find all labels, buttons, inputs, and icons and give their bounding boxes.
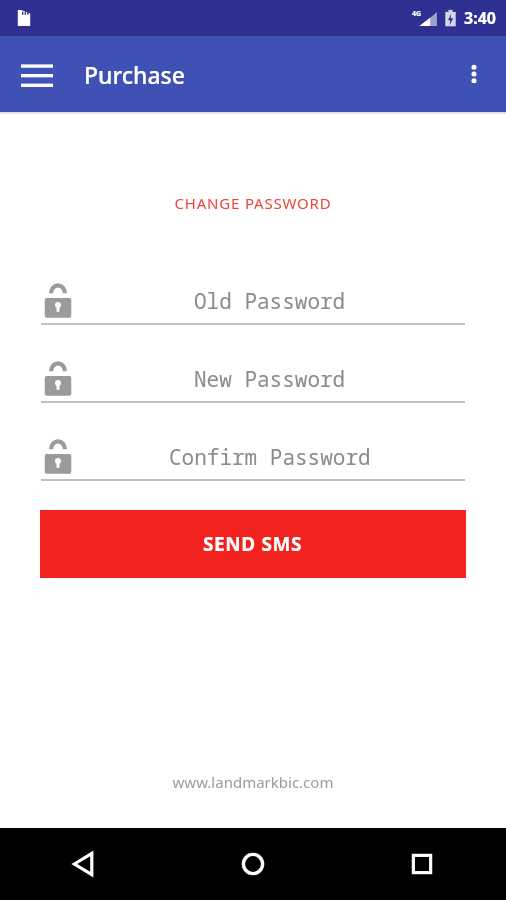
staticText: www.landmarkbic.com	[0, 772, 506, 792]
staticText: Old Password	[194, 287, 346, 316]
staticText: CHANGE PASSWORD	[0, 193, 506, 213]
staticText: 4G	[412, 9, 422, 19]
staticText: SEND SMS	[203, 531, 303, 557]
button[interactable]: Recent apps	[337, 828, 506, 900]
staticText: New Password	[194, 365, 346, 394]
button[interactable]: Home	[168, 828, 337, 900]
staticText: Confirm Password	[169, 443, 371, 472]
staticText: 3:40	[464, 7, 496, 29]
button[interactable]: More options	[450, 50, 498, 98]
button[interactable]: Open navigation menu	[12, 49, 62, 99]
button[interactable]: Old Password	[41, 279, 465, 325]
button[interactable]: New Password	[41, 357, 465, 403]
button[interactable]: SEND SMS	[40, 510, 466, 578]
staticText: Purchase	[84, 59, 185, 90]
button[interactable]: Back	[0, 828, 168, 900]
button[interactable]: Confirm Password	[41, 435, 465, 481]
